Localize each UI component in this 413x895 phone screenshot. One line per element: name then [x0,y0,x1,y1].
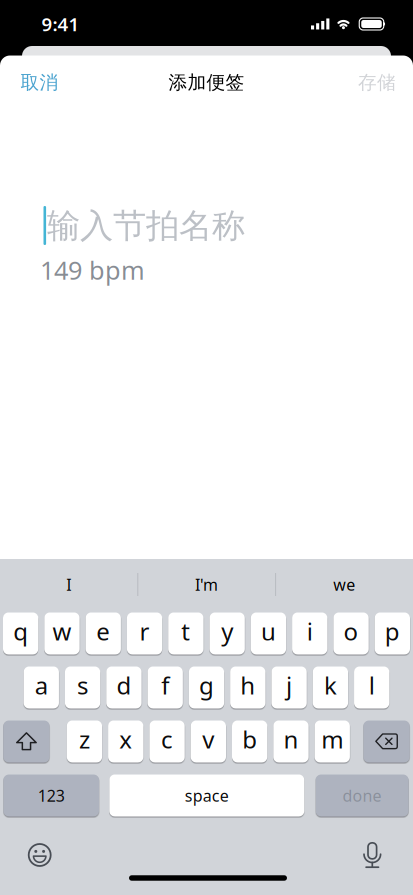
staticText: r [139,615,149,647]
staticText: 存储 [358,71,396,94]
button[interactable]: o [333,612,369,654]
button[interactable]: 123 [3,774,99,816]
staticText: m [321,723,343,755]
button[interactable]: I [9,564,129,604]
button[interactable]: Delete [363,720,410,762]
staticText: l [369,669,375,701]
staticText: done [343,785,382,806]
button[interactable]: g [189,666,224,708]
button[interactable]: t [168,612,203,654]
button[interactable]: p [375,612,410,654]
button[interactable]: n [273,720,309,762]
button[interactable]: f [147,666,183,708]
button[interactable]: Dictation [350,833,394,877]
staticText: d [116,669,131,701]
staticText: 输入节拍名称 [47,205,245,246]
staticText: f [161,669,169,701]
staticText: k [324,669,337,701]
staticText: t [181,615,190,647]
staticText: 149 bpm [40,253,145,287]
button[interactable]: a [24,666,59,708]
button[interactable]: we [284,564,404,604]
button[interactable]: c [149,720,185,762]
staticText: I'm [195,574,218,595]
button[interactable]: u [251,612,286,654]
button[interactable]: w [44,612,80,654]
staticText: space [185,785,229,806]
staticText: e [96,615,110,647]
button[interactable]: x [108,720,143,762]
button[interactable]: m [315,720,350,762]
button[interactable]: q [3,612,38,654]
staticText: z [79,723,90,755]
staticText: p [385,615,400,647]
staticText: v [202,723,214,755]
staticText: s [77,669,88,701]
staticText: w [52,615,71,647]
button[interactable]: r [127,612,162,654]
button[interactable]: done [316,774,408,816]
button[interactable]: e [86,612,121,654]
staticText: 添加便签 [168,71,244,94]
button[interactable]: l [354,666,389,708]
button[interactable]: b [232,720,267,762]
button[interactable]: v [191,720,226,762]
button[interactable]: j [271,666,307,708]
button[interactable]: Shift [3,720,49,762]
staticText: y [221,615,233,647]
button[interactable]: Emoji [18,833,62,877]
button[interactable]: 存储 [358,65,396,100]
staticText: j [286,669,292,701]
staticText: g [199,669,214,701]
staticText: c [161,723,173,755]
staticText: q [13,615,28,647]
staticText: 取消 [20,71,58,94]
staticText: 9:41 [41,12,79,36]
button[interactable]: I'm [146,564,266,604]
button[interactable]: space [109,774,304,816]
button[interactable]: 取消 [20,65,58,100]
staticText: u [261,615,276,647]
staticText: we [333,574,355,595]
button[interactable]: y [209,612,245,654]
button[interactable]: d [106,666,141,708]
staticText: i [307,615,313,647]
staticText: o [343,615,358,647]
staticText: 123 [38,785,65,806]
button[interactable]: z [67,720,102,762]
button[interactable]: i [292,612,327,654]
button[interactable]: k [313,666,348,708]
staticText: a [35,669,48,701]
staticText: n [283,723,298,755]
button[interactable]: h [230,666,265,708]
button[interactable]: s [65,666,100,708]
staticText: h [240,669,255,701]
staticText: I [66,574,71,595]
staticText: x [119,723,132,755]
staticText: b [242,723,257,755]
button[interactable]: 输入节拍名称 [43,205,363,245]
